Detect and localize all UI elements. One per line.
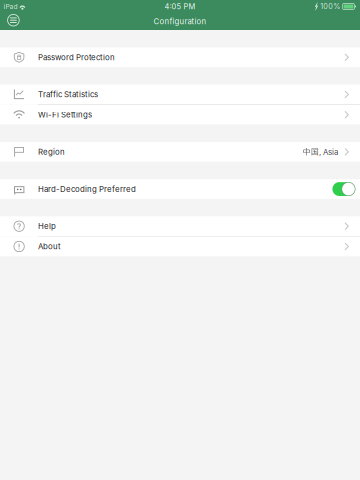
staticText: Password Protection bbox=[38, 52, 115, 62]
staticText: About bbox=[38, 242, 61, 251]
button[interactable]: Help bbox=[0, 216, 360, 236]
staticText: 4:05 PM bbox=[164, 2, 195, 11]
button[interactable]: Wi-Fi Settings bbox=[0, 105, 360, 125]
staticText: Help bbox=[38, 221, 56, 231]
staticText: Region bbox=[38, 147, 65, 157]
button[interactable]: Menu bbox=[3, 13, 23, 30]
staticText: Configuration bbox=[153, 17, 206, 26]
staticText: Wi-Fi Settings bbox=[38, 110, 92, 119]
button[interactable]: Traffic Statistics bbox=[0, 85, 360, 104]
button[interactable]: Password Protection bbox=[0, 47, 360, 67]
staticText: 中国, Asia bbox=[303, 147, 338, 157]
button[interactable]: About bbox=[0, 237, 360, 256]
button[interactable]: Region bbox=[0, 142, 360, 162]
button[interactable]: Hard-Decoding Preferred bbox=[0, 179, 360, 199]
staticText: Traffic Statistics bbox=[38, 90, 98, 99]
staticText: iPad bbox=[4, 2, 18, 11]
staticText: 100% bbox=[320, 2, 340, 11]
staticText: Hard-Decoding Preferred bbox=[38, 184, 136, 194]
